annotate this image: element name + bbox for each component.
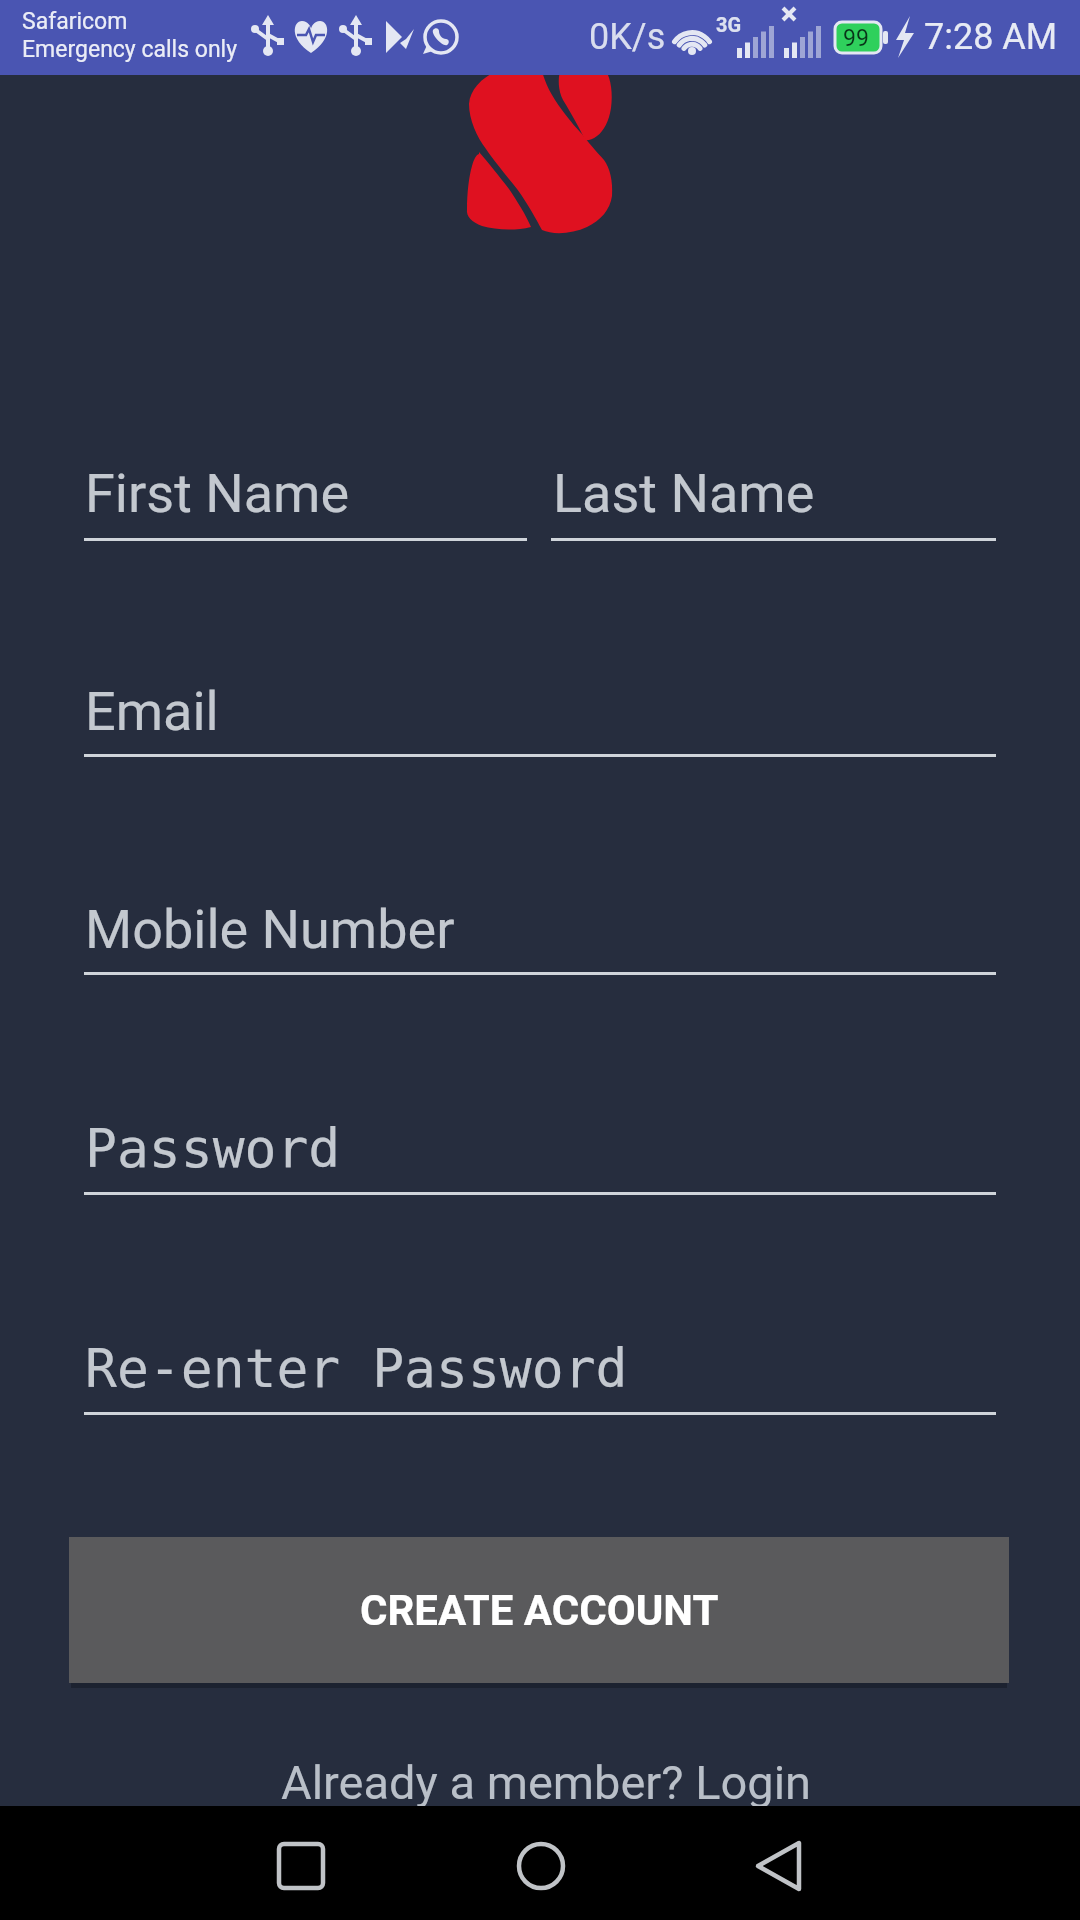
staticText: First Name xyxy=(85,462,350,525)
staticText: 0K/s xyxy=(589,16,666,58)
staticText: Mobile Number xyxy=(85,898,455,961)
button[interactable] xyxy=(748,1836,808,1896)
staticText: Already a member? Login xyxy=(281,1755,812,1810)
staticText: Email xyxy=(85,680,219,743)
button[interactable] xyxy=(84,679,996,757)
staticText: Password xyxy=(85,1118,341,1180)
staticText: CREATE ACCOUNT xyxy=(360,1586,719,1635)
button[interactable]: Already a member? Login xyxy=(6,1755,1080,1815)
staticText: Emergency calls only xyxy=(22,36,238,63)
button[interactable] xyxy=(271,1836,331,1896)
button[interactable] xyxy=(511,1836,571,1896)
staticText: 7:28 AM xyxy=(924,16,1058,58)
staticText: Last Name xyxy=(553,462,815,525)
button[interactable] xyxy=(84,1117,996,1195)
button[interactable]: CREATE ACCOUNT xyxy=(69,1537,1009,1683)
staticText: 3G xyxy=(716,13,742,36)
button[interactable] xyxy=(84,463,527,541)
staticText: 99 xyxy=(843,25,869,52)
staticText: Safaricom xyxy=(22,8,128,35)
button[interactable] xyxy=(84,1337,996,1415)
button[interactable] xyxy=(84,897,996,975)
button[interactable] xyxy=(551,463,996,541)
staticText: Re-enter Password xyxy=(85,1338,628,1400)
